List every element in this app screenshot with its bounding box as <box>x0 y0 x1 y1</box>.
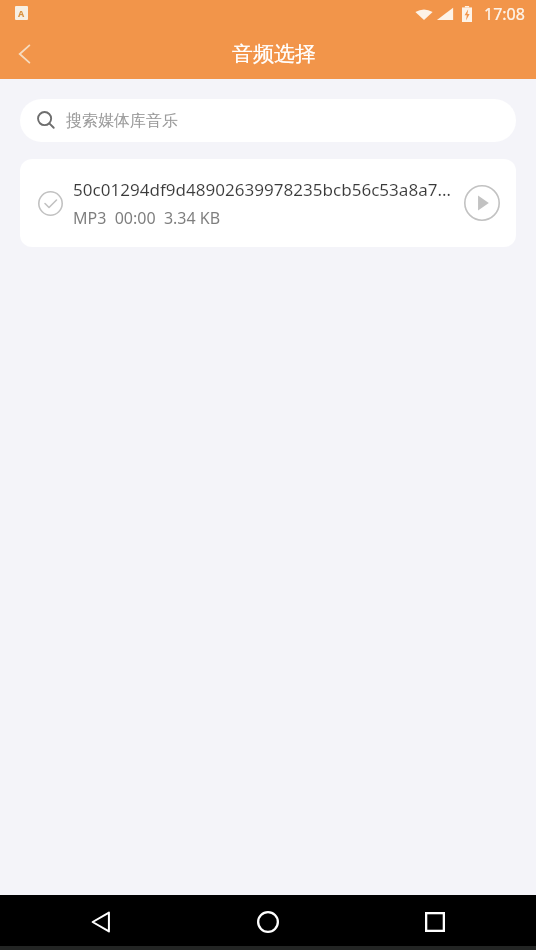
staticText: 50c01294df9d48902639978235bcb56c53a8a71c… <box>73 178 456 201</box>
button[interactable]: Home <box>244 897 292 945</box>
button[interactable]: Recents <box>411 897 459 945</box>
button[interactable]: Select audio <box>20 159 516 247</box>
staticText: A <box>18 7 25 19</box>
staticText: MP3 00:00 3.34 KB <box>73 207 221 229</box>
button[interactable]: Back <box>77 897 125 945</box>
staticText: 17:08 <box>484 3 525 25</box>
button[interactable]: Back <box>0 29 50 79</box>
staticText: 搜索媒体库音乐 <box>66 111 178 131</box>
button[interactable]: 搜索媒体库音乐 <box>20 99 516 142</box>
button[interactable]: Select audio <box>32 185 68 221</box>
button[interactable]: Play <box>460 181 504 225</box>
staticText: 音频选择 <box>232 41 316 67</box>
